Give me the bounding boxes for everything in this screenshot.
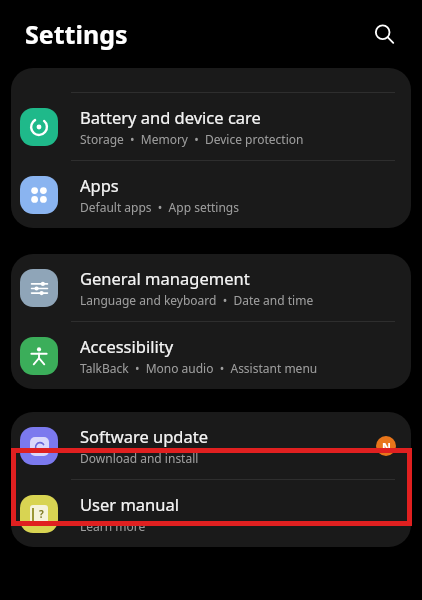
staticText: Battery and device care bbox=[80, 106, 261, 128]
button[interactable]: ? bbox=[11, 480, 411, 547]
button[interactable]: Apps bbox=[11, 161, 411, 228]
staticText: Storage • Memory • Device protection bbox=[80, 131, 304, 147]
button[interactable]: Software update bbox=[11, 412, 411, 479]
button[interactable]: Search bbox=[366, 16, 402, 52]
staticText: TalkBack • Mono audio • Assistant menu bbox=[80, 360, 318, 376]
staticText: Accessibility bbox=[80, 335, 174, 357]
staticText: Apps bbox=[80, 174, 119, 196]
staticText: Learn more bbox=[80, 518, 146, 534]
button[interactable]: General management bbox=[11, 254, 411, 321]
button[interactable]: Accessibility bbox=[11, 322, 411, 389]
staticText: N bbox=[382, 439, 391, 454]
staticText: Software update bbox=[80, 425, 208, 447]
button[interactable]: Digital Wellbeing bbox=[11, 68, 411, 72]
staticText: Download and install bbox=[80, 450, 199, 466]
staticText: Settings bbox=[25, 17, 366, 51]
staticText: User manual bbox=[80, 493, 179, 515]
staticText: ? bbox=[39, 507, 44, 521]
staticText: General management bbox=[80, 267, 250, 289]
staticText: Default apps • App settings bbox=[80, 199, 239, 215]
staticText: Language and keyboard • Date and time bbox=[80, 292, 314, 308]
button[interactable]: Battery and device care bbox=[11, 93, 411, 160]
